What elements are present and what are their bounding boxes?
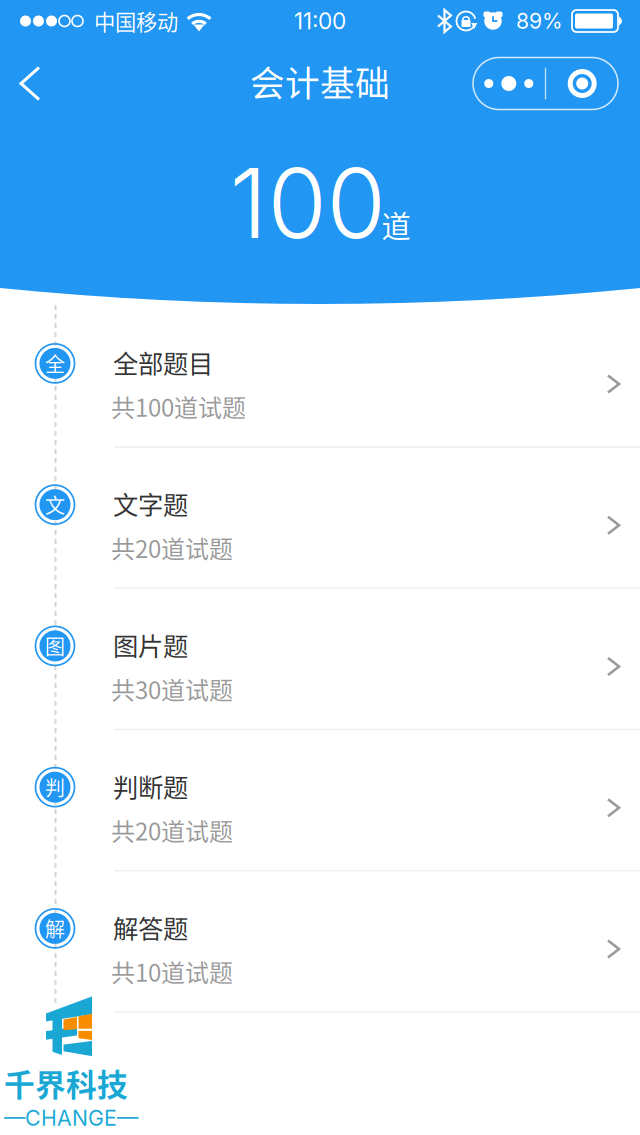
staticText: 共100道试题 [111,389,246,424]
button[interactable]: 解 [0,871,640,1013]
staticText: 文字题 [113,485,188,522]
staticText: 共10道试题 [111,954,233,989]
staticText: 图 [45,631,65,660]
staticText: 中国移动 [94,6,178,36]
button[interactable]: 全 [0,306,640,448]
staticText: 判断题 [113,768,188,804]
staticText: 100 [229,145,385,261]
button[interactable]: 文 [0,448,640,589]
staticText: 判 [45,773,65,802]
staticText: 会计基础 [250,56,390,107]
staticText: 解答题 [113,909,188,946]
staticText: —CHANGE— [4,1105,138,1131]
staticText: 解 [45,914,65,943]
staticText: 千界科技 [4,1061,128,1105]
staticText: 共20道试题 [111,813,233,848]
button[interactable]: Back [0,42,69,125]
staticText: 图片题 [113,626,188,663]
staticText: 共30道试题 [111,671,233,706]
staticText: 文 [45,490,65,519]
staticText: 道 [381,203,410,245]
staticText: 全 [45,349,65,378]
staticText: 全部题目 [113,344,213,381]
staticText: 共20道试题 [111,530,233,565]
staticText: 11:00 [294,7,346,35]
button[interactable]: 判 [0,730,640,871]
button[interactable]: More and close [473,57,640,109]
staticText: 89% [516,8,563,34]
button[interactable]: 图 [0,589,640,730]
